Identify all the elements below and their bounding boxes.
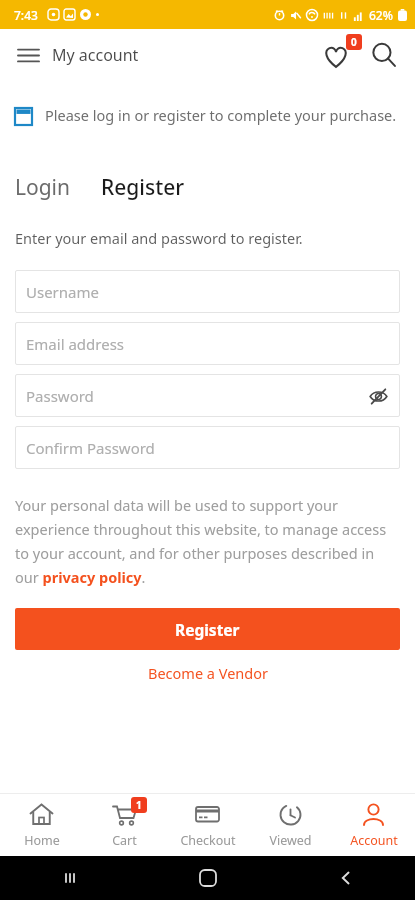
staticText: Home [24, 832, 60, 849]
staticText: Username [26, 282, 99, 302]
staticText: Checkout [180, 832, 236, 849]
staticText: 0 [351, 35, 357, 49]
staticText: 62% [369, 7, 393, 23]
button[interactable]: Home [139, 856, 277, 900]
button[interactable]: Checkout [166, 794, 249, 856]
button[interactable]: Email address [15, 322, 400, 365]
staticText: Your personal data will be used to suppo… [15, 495, 400, 587]
button[interactable]: Search [361, 32, 407, 78]
button[interactable]: Open navigation menu [6, 33, 50, 77]
button[interactable]: Password [15, 374, 400, 417]
staticText: 1 [136, 798, 142, 812]
button[interactable]: Become a Vendor [15, 663, 400, 683]
button[interactable]: Account [332, 794, 415, 856]
button[interactable]: Wishlist [315, 32, 361, 78]
button[interactable]: Register [15, 608, 400, 650]
button[interactable]: Recent apps [0, 856, 139, 900]
button[interactable]: Viewed [249, 794, 332, 856]
staticText: Become a Vendor [148, 663, 268, 683]
staticText: 7:43 [14, 7, 38, 23]
staticText: Enter your email and password to registe… [15, 228, 303, 248]
button[interactable]: 1 [83, 794, 166, 856]
button[interactable]: Username [15, 270, 400, 313]
staticText: Register [175, 619, 240, 640]
button[interactable]: Login [15, 173, 71, 202]
staticText: Register [101, 173, 185, 202]
staticText: Confirm Password [26, 438, 155, 458]
staticText: Login [15, 173, 71, 202]
staticText: Cart [112, 832, 137, 849]
button[interactable]: Back [277, 856, 415, 900]
staticText: Please log in or register to complete yo… [45, 105, 397, 125]
button[interactable]: Register [101, 173, 185, 202]
button[interactable]: Show password [366, 384, 390, 408]
button[interactable]: Confirm Password [15, 426, 400, 469]
staticText: Password [26, 386, 94, 406]
staticText: My account [52, 44, 139, 66]
button[interactable]: Home [0, 794, 83, 856]
staticText: Viewed [269, 832, 312, 849]
staticText: Email address [26, 334, 125, 354]
staticText: Account [350, 832, 398, 849]
